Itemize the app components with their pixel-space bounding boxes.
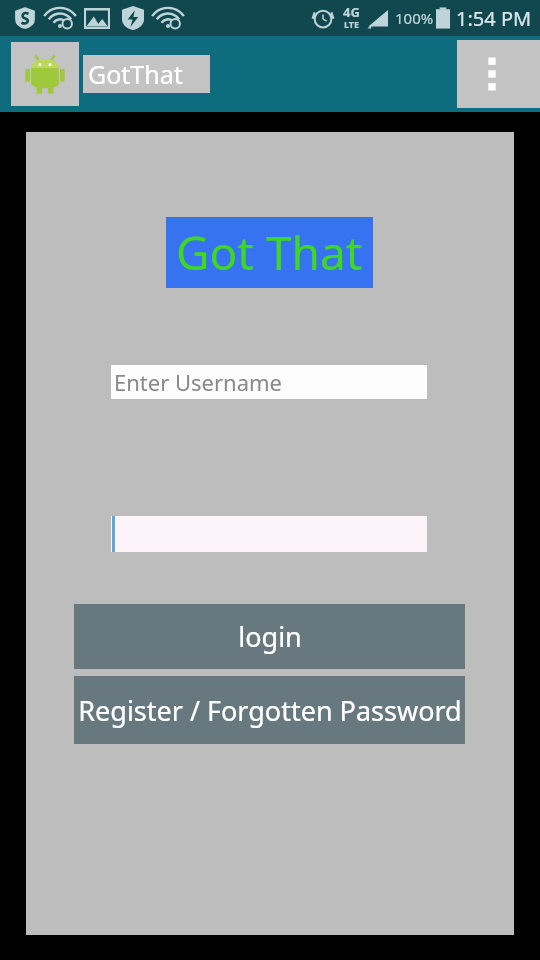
staticText: login (238, 618, 302, 655)
staticText: Register / Forgotten Password (78, 692, 462, 729)
staticText: 100% (395, 8, 434, 28)
staticText: Enter Username (114, 367, 283, 397)
staticText: LTE (344, 18, 360, 30)
staticText: 1:54 PM (456, 5, 532, 32)
button[interactable] (11, 42, 79, 106)
button[interactable] (111, 516, 427, 552)
button[interactable]: Register / Forgotten Password (74, 676, 465, 744)
button[interactable]: Enter Username (111, 365, 427, 399)
button[interactable]: More options (457, 40, 540, 108)
staticText: 4G (343, 3, 360, 21)
staticText: Got That (176, 221, 363, 284)
button[interactable]: login (74, 604, 465, 669)
staticText: GotThat (88, 57, 183, 91)
